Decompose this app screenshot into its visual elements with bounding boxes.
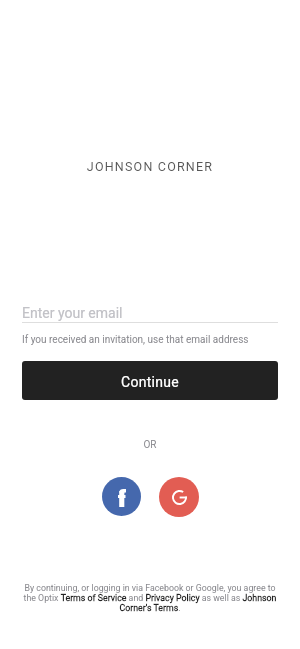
staticText: JOHNSON CORNER (0, 159, 300, 174)
button[interactable]: Continue with Google (159, 477, 199, 517)
staticText: If you received an invitation, use that … (22, 334, 249, 346)
staticText: OR (22, 439, 278, 451)
button[interactable]: Email address field (22, 305, 278, 321)
button[interactable]: Continue with Facebook (102, 477, 141, 516)
staticText: Enter your email (22, 305, 123, 321)
staticText: By continuing, or logging in via Faceboo… (22, 583, 278, 613)
button[interactable]: Continue (22, 361, 278, 400)
staticText: Continue (121, 374, 180, 390)
